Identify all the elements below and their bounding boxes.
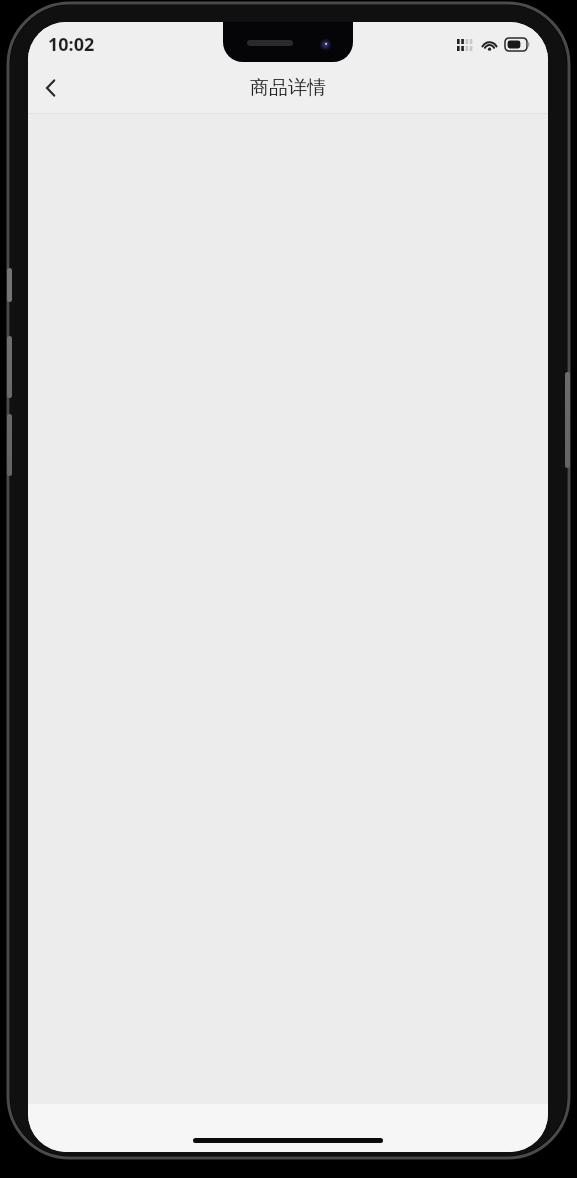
staticText: 10:02	[48, 32, 95, 57]
button[interactable]: Back	[28, 65, 74, 111]
staticText: 商品详情	[250, 76, 326, 100]
